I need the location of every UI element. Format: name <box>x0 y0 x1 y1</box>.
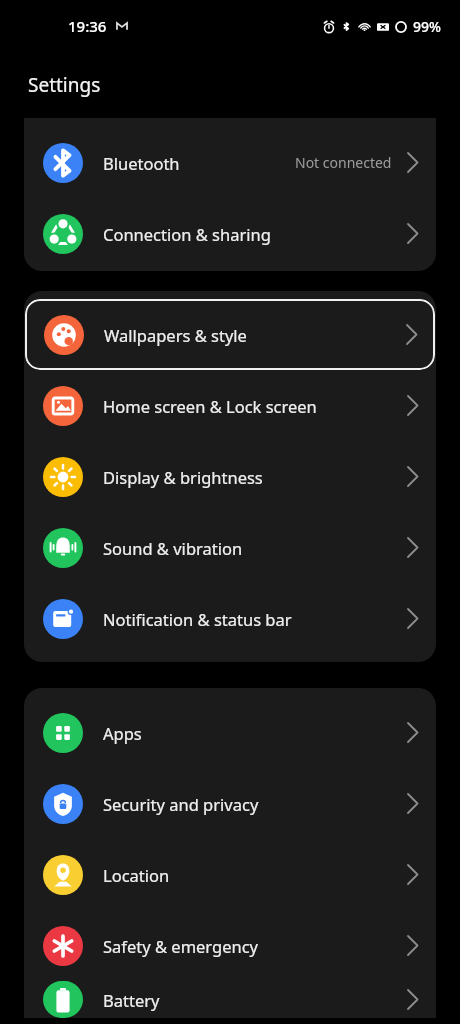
staticText: Settings <box>28 72 101 98</box>
staticText: Security and privacy <box>103 793 259 815</box>
button[interactable]: Connection & sharing <box>24 198 436 269</box>
staticText: Home screen & Lock screen <box>103 395 317 417</box>
staticText: Sound & vibration <box>103 537 243 559</box>
button[interactable]: Battery <box>24 981 436 1018</box>
staticText: Display & brightness <box>103 466 263 488</box>
staticText: Location <box>103 864 170 886</box>
staticText: 99% <box>413 17 441 36</box>
staticText: Bluetooth <box>103 152 180 174</box>
button[interactable]: Security and privacy <box>24 768 436 839</box>
staticText: Connection & sharing <box>103 223 271 245</box>
staticText: Battery <box>103 989 160 1011</box>
button[interactable]: Home screen & Lock screen <box>24 370 436 441</box>
staticText: Apps <box>103 722 142 744</box>
staticText: Notification & status bar <box>103 608 292 630</box>
staticText: Not connected <box>295 153 392 172</box>
staticText: Safety & emergency <box>103 935 259 957</box>
button[interactable]: Notification & status bar <box>24 583 436 654</box>
button[interactable]: Location <box>24 839 436 910</box>
button[interactable]: Safety & emergency <box>24 910 436 981</box>
button[interactable]: Sound & vibration <box>24 512 436 583</box>
staticText: Wallpapers & style <box>104 324 247 346</box>
button[interactable]: Bluetooth <box>24 127 436 198</box>
staticText: 19:36 <box>68 16 107 36</box>
button[interactable]: Wallpapers & style <box>25 299 435 370</box>
button[interactable]: Apps <box>24 697 436 768</box>
button[interactable]: Display & brightness <box>24 441 436 512</box>
